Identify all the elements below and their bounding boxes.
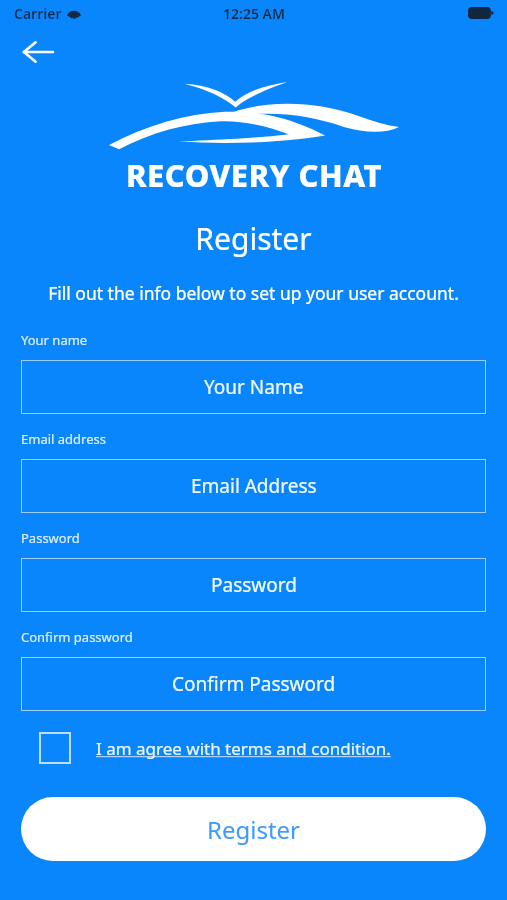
staticText: Your Name [204, 374, 304, 400]
staticText: Register [207, 813, 301, 846]
staticText: I am agree with terms and condition. [96, 737, 391, 760]
button[interactable]: Confirm Password [21, 657, 486, 711]
button[interactable]: Your Name [21, 360, 486, 414]
staticText: Email Address [191, 473, 317, 499]
staticText: RECOVERY CHAT [126, 154, 383, 196]
staticText: Password [21, 529, 80, 547]
staticText: Your name [21, 331, 88, 349]
staticText: Register [0, 218, 507, 259]
staticText: Carrier [14, 4, 62, 23]
button[interactable]: Password [21, 558, 486, 612]
button[interactable]: Agree to terms checkbox [39, 732, 71, 764]
staticText: Fill out the info below to set up your u… [16, 281, 491, 305]
button[interactable]: Back [12, 26, 64, 78]
staticText: Email address [21, 430, 106, 448]
staticText: Confirm password [21, 628, 133, 646]
staticText: 12:25 AM [223, 4, 285, 23]
button[interactable]: I am agree with terms and condition. [96, 737, 391, 760]
button[interactable]: Email Address [21, 459, 486, 513]
staticText: Confirm Password [172, 671, 336, 697]
button[interactable]: Register [21, 797, 486, 861]
staticText: Password [211, 572, 297, 598]
